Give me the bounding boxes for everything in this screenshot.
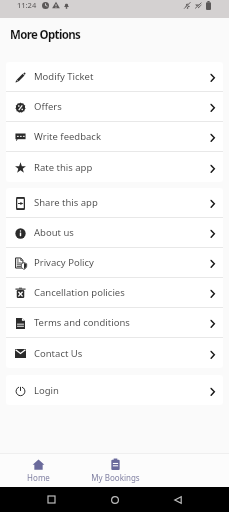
staticText: Login [34,384,59,397]
staticText: More Options [10,27,81,43]
staticText: Privacy Policy [34,256,94,269]
staticText: Contact Us [34,347,83,360]
button[interactable]: My Bookings [77,455,153,486]
button[interactable]: Rate this app [6,152,223,182]
button[interactable]: Offers [6,92,223,121]
staticText: Terms and conditions [34,316,130,329]
button[interactable]: Privacy Policy [6,248,223,277]
button[interactable]: Home [102,487,128,512]
button[interactable]: Back [165,487,191,512]
staticText: Modify Ticket [34,70,94,83]
button[interactable]: Contact Us [6,338,223,368]
staticText: Write feedback [34,130,102,143]
staticText: Rate this app [34,161,93,174]
staticText: 11:24 [17,0,37,10]
staticText: Offers [34,100,62,113]
button[interactable]: Home [0,455,77,486]
staticText: About us [34,226,74,239]
staticText: Home [27,472,50,483]
button[interactable]: Write feedback [6,122,223,151]
button[interactable]: Modify Ticket [6,62,223,91]
button[interactable]: Share this app [6,188,223,217]
staticText: My Bookings [91,472,140,483]
button[interactable]: Login [6,375,223,405]
button[interactable]: Recents [38,487,64,512]
staticText: Share this app [34,196,98,209]
button[interactable]: About us [6,218,223,247]
button[interactable]: Cancellation policies [6,278,223,307]
staticText: Cancellation policies [34,286,125,299]
button[interactable]: Terms and conditions [6,308,223,337]
